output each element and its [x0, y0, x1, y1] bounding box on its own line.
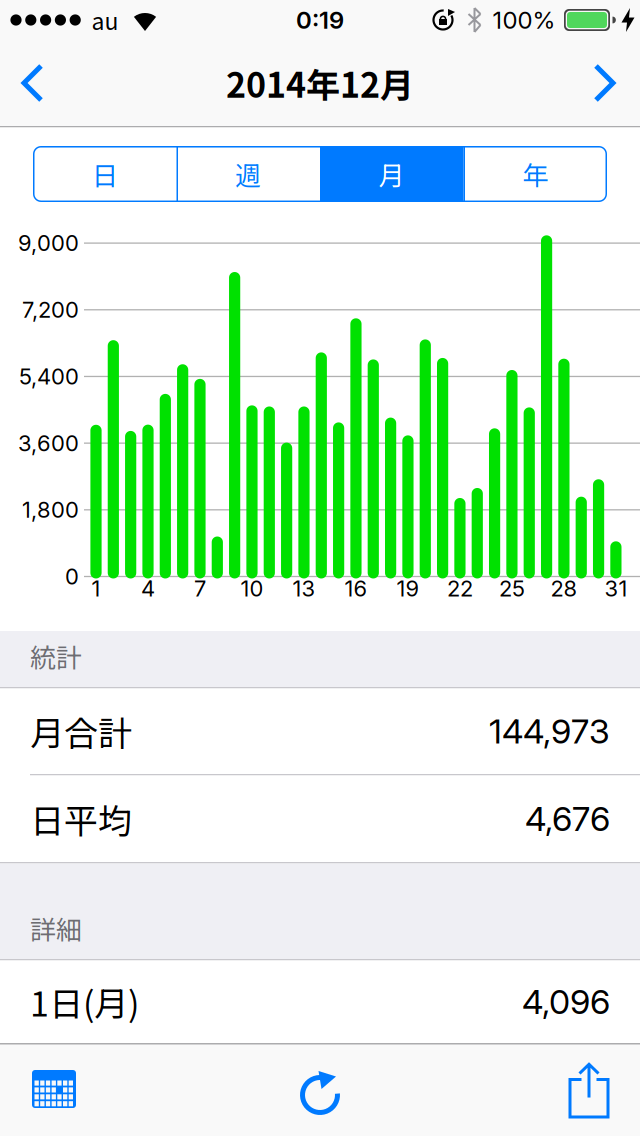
staticText: 統計: [30, 637, 82, 675]
staticText: 16: [344, 575, 367, 602]
staticText: 日平均: [30, 794, 132, 843]
staticText: 144,973: [489, 711, 610, 752]
staticText: 年: [522, 155, 548, 193]
staticText: 3,600: [18, 430, 79, 456]
staticText: 5,400: [19, 363, 79, 390]
staticText: 28: [550, 575, 577, 602]
button[interactable]: 更新: [280, 1050, 360, 1136]
staticText: 0:19: [296, 5, 344, 34]
staticText: au: [91, 3, 118, 37]
staticText: 週: [235, 155, 261, 193]
staticText: 4,096: [522, 981, 610, 1022]
button[interactable]: 共有: [548, 1043, 629, 1136]
staticText: 4: [141, 575, 155, 602]
button[interactable]: 前月: [0, 40, 60, 126]
button[interactable]: 日: [33, 146, 176, 202]
staticText: 詳細: [30, 909, 82, 947]
staticText: 1,800: [22, 496, 79, 523]
staticText: 1: [91, 575, 100, 602]
staticText: 7,200: [22, 296, 79, 323]
staticText: 1日(月): [30, 977, 139, 1026]
staticText: 月: [379, 155, 405, 193]
staticText: 7: [194, 575, 206, 602]
button[interactable]: 翌月: [577, 40, 637, 126]
button[interactable]: カレンダー: [0, 1043, 96, 1125]
staticText: 13: [292, 575, 315, 602]
button[interactable]: 月: [320, 146, 463, 202]
button[interactable]: 1日(月): [0, 960, 640, 1043]
button[interactable]: 月合計: [0, 688, 640, 774]
staticText: 9,000: [18, 230, 79, 256]
button[interactable]: 週: [176, 146, 320, 202]
button[interactable]: 年: [463, 146, 607, 202]
button[interactable]: 日平均: [0, 775, 640, 862]
staticText: 19: [396, 575, 419, 602]
staticText: 月合計: [30, 707, 132, 756]
staticText: 2014年12月: [226, 58, 414, 108]
staticText: 日: [92, 155, 118, 193]
staticText: 100%: [492, 5, 555, 34]
staticText: 22: [447, 575, 473, 602]
staticText: 31: [604, 575, 627, 602]
staticText: 25: [499, 575, 525, 602]
staticText: 0: [65, 563, 79, 590]
staticText: 4,676: [525, 798, 610, 839]
staticText: 10: [240, 575, 263, 602]
